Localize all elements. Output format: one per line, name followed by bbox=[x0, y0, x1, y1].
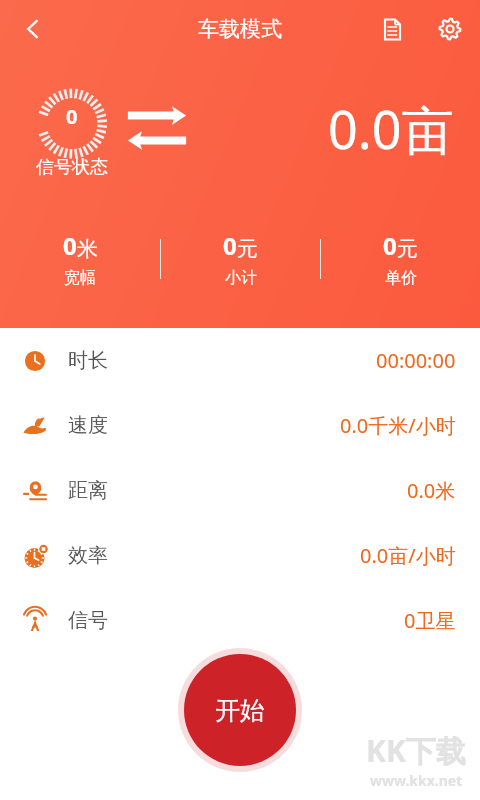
staticText: 0.0千米/小时 bbox=[340, 412, 456, 439]
staticText: 效率 bbox=[68, 543, 108, 568]
button[interactable]: Records bbox=[370, 7, 414, 51]
staticText: 0 bbox=[223, 229, 237, 262]
staticText: 元 bbox=[397, 236, 418, 262]
staticText: 速度 bbox=[68, 413, 108, 438]
button[interactable]: 信号 bbox=[0, 588, 480, 653]
staticText: 0 bbox=[66, 103, 78, 130]
staticText: 信号状态 bbox=[36, 156, 108, 179]
staticText: 信号 bbox=[68, 608, 108, 633]
staticText: 0.0亩 bbox=[328, 93, 454, 164]
staticText: 0.0亩/小时 bbox=[360, 542, 456, 569]
staticText: 0卫星 bbox=[404, 607, 456, 634]
button[interactable]: 开始 bbox=[178, 648, 302, 772]
staticText: 00:00:00 bbox=[376, 347, 456, 374]
button[interactable]: 距离 bbox=[0, 458, 480, 523]
staticText: 元 bbox=[237, 236, 258, 262]
staticText: 开始 bbox=[215, 695, 265, 726]
staticText: 小计 bbox=[225, 268, 257, 288]
button[interactable]: 时长 bbox=[0, 328, 480, 393]
staticText: 0 bbox=[63, 229, 77, 262]
staticText: www.kkx.net bbox=[370, 771, 463, 790]
staticText: 米 bbox=[77, 236, 98, 262]
staticText: 0.0米 bbox=[407, 477, 456, 504]
staticText: 宽幅 bbox=[64, 268, 96, 288]
button[interactable]: Settings bbox=[428, 7, 472, 51]
staticText: 0 bbox=[383, 229, 397, 262]
button[interactable]: Back bbox=[10, 6, 56, 52]
button[interactable]: 效率 bbox=[0, 523, 480, 588]
staticText: 单价 bbox=[385, 268, 417, 288]
staticText: 车载模式 bbox=[198, 16, 282, 42]
staticText: 距离 bbox=[68, 478, 108, 503]
button[interactable]: 速度 bbox=[0, 393, 480, 458]
staticText: 时长 bbox=[68, 348, 108, 373]
staticText: KK下载 bbox=[366, 730, 466, 771]
